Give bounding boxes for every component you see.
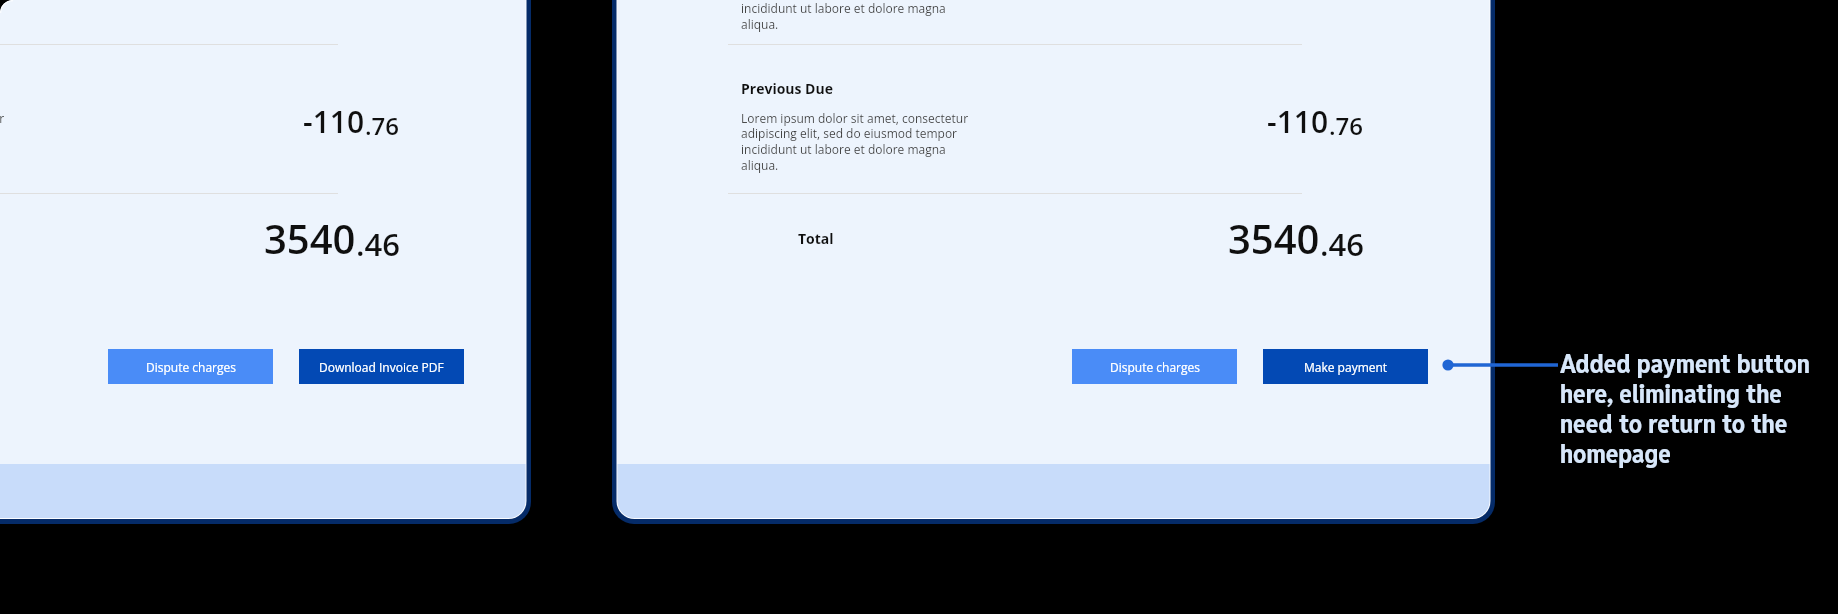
staticText: -110	[1267, 101, 1329, 142]
staticText: .46	[356, 223, 400, 265]
staticText: -110	[303, 101, 365, 142]
button[interactable]: Bottom navigation	[0, 464, 525, 518]
staticText: Total	[798, 229, 834, 248]
staticText: Make payment	[1304, 359, 1388, 375]
other: Annotation	[1560, 347, 1810, 471]
staticText: .76	[1329, 109, 1364, 142]
button[interactable]: Download Invoice PDF	[299, 349, 464, 384]
staticText: Download Invoice PDF	[319, 359, 444, 375]
button[interactable]: Bottom navigation	[618, 464, 1489, 518]
staticText: Dispute charges	[146, 359, 236, 375]
staticText: .46	[1320, 223, 1364, 265]
staticText: Lorem ipsum dolor sit amet, consectetur …	[741, 110, 969, 174]
staticText: Lorem ipsum dolor sit amet, consectetur …	[0, 0, 5, 33]
staticText: Previous Due	[741, 79, 833, 98]
button[interactable]: Make payment	[1263, 349, 1428, 384]
staticText: Dispute charges	[1110, 359, 1200, 375]
staticText: Lorem ipsum dolor sit amet, consectetur …	[0, 110, 5, 174]
staticText: .76	[365, 109, 400, 142]
button[interactable]: Dispute charges	[1072, 349, 1237, 384]
staticText: Added payment button here, eliminating t…	[1560, 347, 1810, 471]
staticText: 3540	[264, 211, 356, 265]
staticText: 3540	[1228, 211, 1320, 265]
staticText: Lorem ipsum dolor sit amet, consectetur …	[741, 0, 969, 33]
button[interactable]: Dispute charges	[108, 349, 273, 384]
